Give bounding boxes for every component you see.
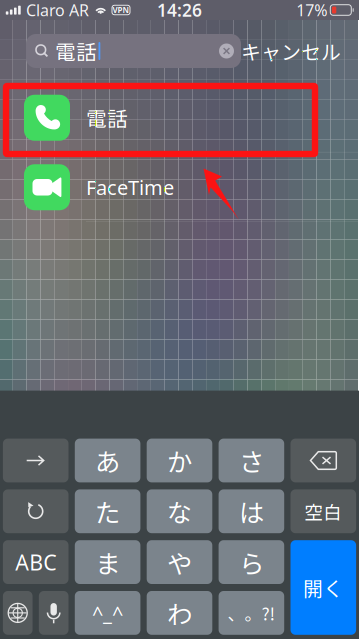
- button[interactable]: キャンセル: [241, 34, 341, 68]
- button[interactable]: [75, 439, 140, 482]
- staticText: 空白: [304, 498, 342, 525]
- staticText: わ: [167, 595, 192, 631]
- button[interactable]: [290, 540, 356, 635]
- staticText: ら: [239, 544, 264, 580]
- button[interactable]: [147, 540, 212, 584]
- staticText: 電話: [86, 103, 128, 133]
- staticText: 、。?!: [227, 600, 275, 625]
- staticText: さ: [239, 442, 264, 479]
- staticText: 開く: [303, 573, 343, 602]
- staticText: FaceTime: [86, 174, 174, 201]
- button[interactable]: [75, 489, 140, 533]
- staticText: 電話: [55, 36, 97, 66]
- staticText: ま: [95, 544, 120, 580]
- button[interactable]: [3, 540, 68, 584]
- button[interactable]: [219, 540, 284, 584]
- staticText: VPN: [112, 5, 129, 15]
- button[interactable]: Delete: [290, 439, 356, 482]
- staticText: た: [95, 493, 120, 530]
- staticText: Claro AR: [26, 0, 89, 21]
- button[interactable]: [75, 591, 140, 635]
- staticText: は: [239, 493, 264, 530]
- button[interactable]: FaceTime: [0, 152, 359, 222]
- button[interactable]: [219, 489, 284, 533]
- button[interactable]: Switch keyboard: [3, 591, 32, 635]
- button[interactable]: 電話: [0, 83, 359, 152]
- staticText: な: [167, 493, 192, 530]
- button[interactable]: Next candidate: [3, 439, 68, 482]
- staticText: 17%: [296, 0, 327, 21]
- staticText: や: [167, 544, 192, 580]
- button[interactable]: [147, 439, 212, 482]
- button[interactable]: [147, 489, 212, 533]
- button[interactable]: 電話: [26, 34, 241, 68]
- staticText: ^_^: [92, 600, 123, 626]
- button[interactable]: [147, 591, 212, 635]
- button[interactable]: [75, 540, 140, 584]
- button[interactable]: Dictation: [39, 591, 68, 635]
- staticText: あ: [95, 442, 120, 479]
- staticText: か: [167, 442, 192, 479]
- button[interactable]: [290, 489, 356, 533]
- staticText: キャンセル: [241, 36, 341, 65]
- button[interactable]: [219, 439, 284, 482]
- button[interactable]: [219, 591, 284, 635]
- button[interactable]: Undo: [3, 489, 68, 533]
- staticText: ABC: [15, 548, 56, 576]
- staticText: 14:26: [157, 0, 202, 21]
